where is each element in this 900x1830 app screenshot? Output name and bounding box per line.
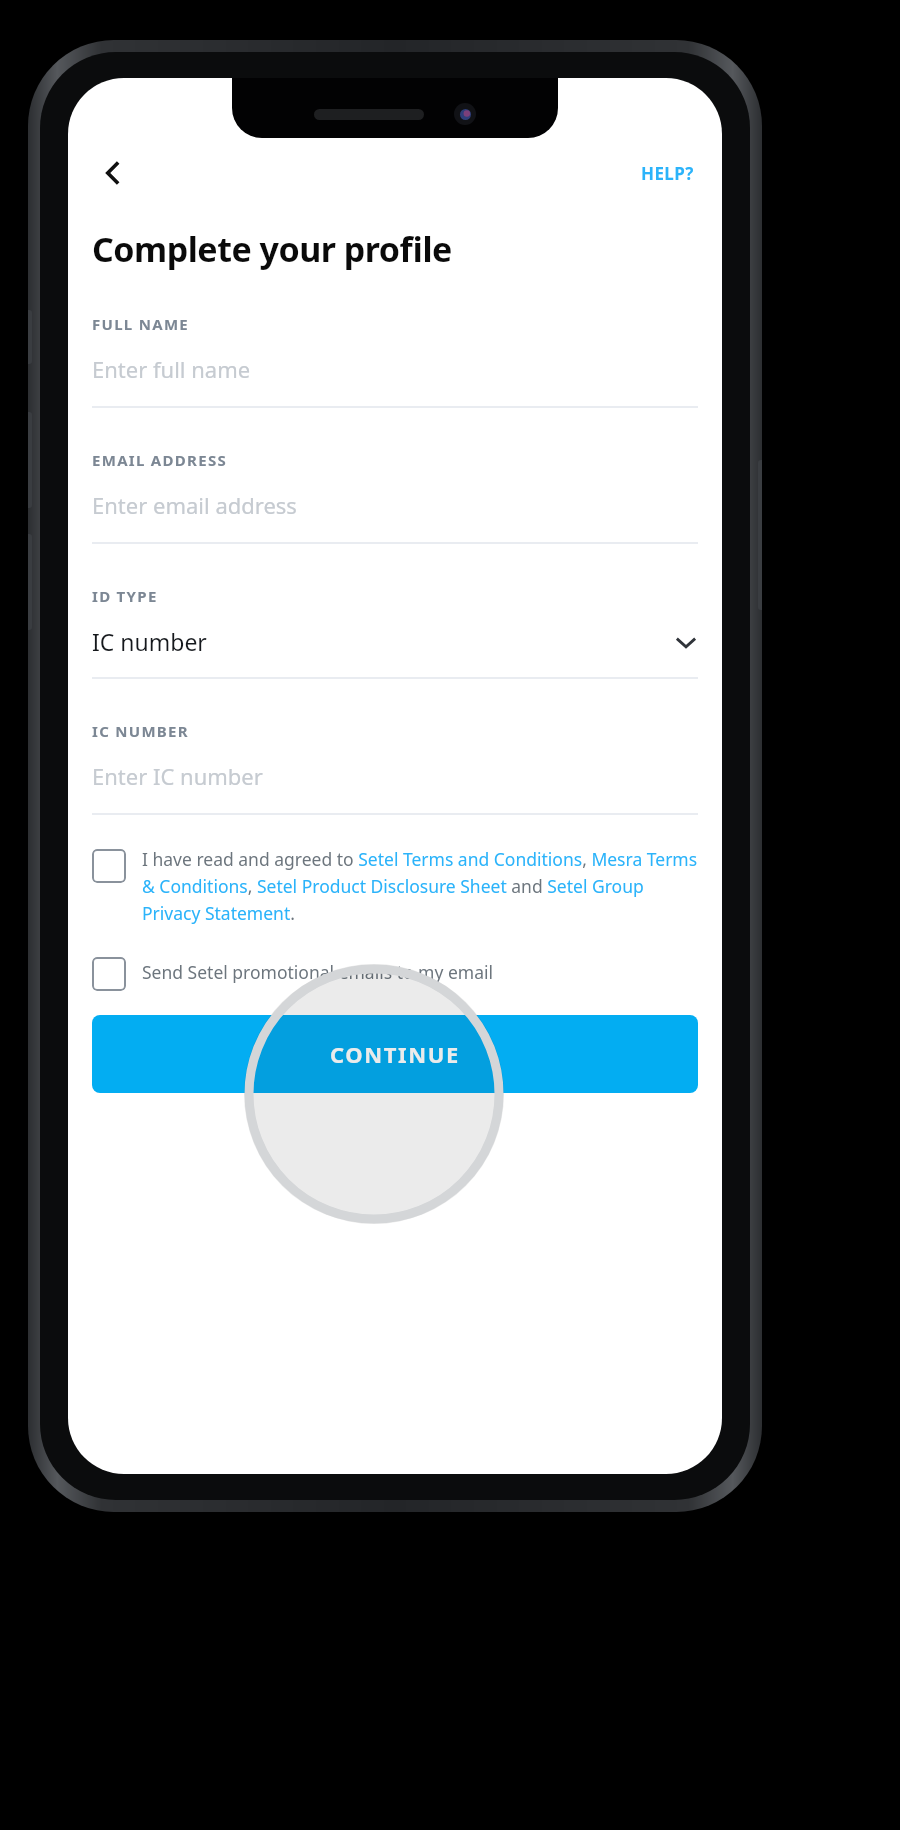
staticText: CONTINUE	[330, 1039, 460, 1069]
staticText: HELP?	[641, 162, 694, 185]
button[interactable]: Enter IC number	[68, 761, 722, 815]
button[interactable]: HELP?	[637, 156, 698, 191]
staticText: I have read and agreed to Setel Terms an…	[142, 847, 698, 925]
button[interactable]: Send Setel promotional emails to my emai…	[68, 951, 722, 993]
button[interactable]: Enter full name	[68, 354, 722, 408]
button[interactable]: CONTINUE	[92, 1015, 698, 1093]
staticText: IC number	[92, 626, 207, 657]
staticText: EMAIL ADDRESS	[92, 450, 228, 470]
button[interactable]: Select ID type	[68, 626, 722, 679]
staticText: Enter IC number	[92, 761, 263, 791]
button[interactable]: Back	[92, 151, 136, 195]
staticText: Complete your profile	[92, 226, 452, 272]
button[interactable]: I have read and agreed to Setel Terms an…	[68, 843, 722, 929]
staticText: IC NUMBER	[92, 721, 189, 741]
staticText: ID TYPE	[92, 586, 158, 606]
staticText: FULL NAME	[92, 314, 190, 334]
button[interactable]: Enter email address	[68, 490, 722, 544]
staticText: Enter full name	[92, 354, 251, 384]
staticText: Enter email address	[92, 490, 297, 520]
staticText: Send Setel promotional emails to my emai…	[142, 960, 494, 984]
